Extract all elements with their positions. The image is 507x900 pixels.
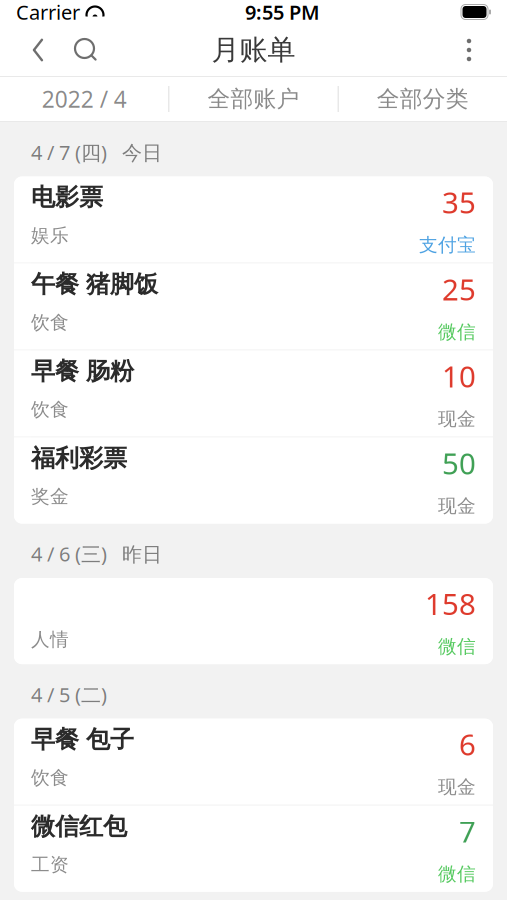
button[interactable]: 早餐 肠粉 [14,351,493,438]
staticText: 6 [459,725,476,764]
button[interactable] [14,578,493,664]
button[interactable]: More options [445,24,493,76]
button[interactable]: 全部分类 [339,76,507,122]
staticText: 7 [459,812,476,851]
button[interactable]: 微信红包 [14,806,493,892]
staticText: 35 [442,183,476,222]
staticText: 月账单 [211,33,295,67]
staticText: 9:55 PM [245,0,320,25]
staticText: 50 [442,444,476,483]
button[interactable]: Back [14,24,62,76]
button[interactable]: 2022 / 4 [0,76,168,122]
staticText: 饮食 [31,766,69,789]
staticText: 4 / 6 (三) 昨日 [31,541,162,567]
staticText: 158 [425,584,476,623]
staticText: 4 / 5 (二) [31,681,107,708]
button[interactable]: 午餐 猪脚饭 [14,264,493,351]
staticText: 饮食 [31,311,69,334]
staticText: 早餐 肠粉 [31,357,134,386]
staticText: 支付宝 [419,234,476,256]
button[interactable]: 早餐 包子 [14,719,493,806]
staticText: 福利彩票 [31,444,127,473]
staticText: 2022 / 4 [42,84,127,114]
staticText: 全部账户 [207,85,299,113]
staticText: 饮食 [31,398,69,421]
staticText: 午餐 猪脚饭 [31,270,158,299]
staticText: 奖金 [31,485,69,508]
button[interactable]: 电影票 [14,177,493,264]
staticText: 微信红包 [31,812,127,841]
staticText: 现金 [438,408,476,430]
staticText: 早餐 包子 [31,725,134,754]
button[interactable]: Search [62,24,110,76]
staticText: 25 [442,270,476,309]
staticText: 现金 [438,495,476,517]
staticText: 微信 [438,321,476,343]
staticText: 微信 [438,635,476,658]
staticText: Carrier [16,0,80,25]
button[interactable]: 全部账户 [169,76,338,122]
button[interactable]: 福利彩票 [14,438,493,524]
staticText: 人情 [31,628,69,651]
staticText: 现金 [438,776,476,799]
staticText: 娱乐 [31,224,69,247]
staticText: 工资 [31,853,69,876]
staticText: 4 / 7 (四) 今日 [31,139,162,166]
staticText: 10 [442,357,476,396]
staticText: 微信 [438,863,476,886]
staticText: 全部分类 [377,85,469,113]
staticText: 电影票 [31,183,103,212]
